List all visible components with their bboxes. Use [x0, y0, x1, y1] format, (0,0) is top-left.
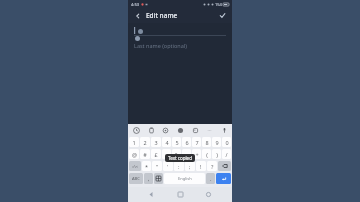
- button[interactable]: 6: [182, 137, 191, 147]
- button[interactable]: &: [172, 149, 181, 159]
- staticText: 5: [175, 139, 179, 146]
- staticText: /: [225, 151, 228, 158]
- button[interactable]: 7: [192, 137, 201, 147]
- staticText: Edit name: [146, 11, 178, 20]
- button[interactable]: ": [152, 161, 162, 171]
- button[interactable]: Enter: [216, 173, 231, 184]
- staticText: ;: [189, 163, 191, 170]
- button[interactable]: Emoji: [154, 173, 163, 184]
- button[interactable]: @: [129, 149, 139, 159]
- button[interactable]: Recents: [203, 189, 214, 200]
- staticText: £: [154, 151, 158, 158]
- staticText: 3: [154, 139, 158, 146]
- staticText: +: [195, 151, 199, 158]
- staticText: *: [145, 163, 149, 170]
- button[interactable]: 9: [212, 137, 221, 147]
- staticText: 4: [165, 139, 169, 146]
- button[interactable]: ;: [185, 161, 195, 171]
- button[interactable]: (: [202, 149, 211, 159]
- button[interactable]: Save: [217, 10, 228, 21]
- button[interactable]: 2: [140, 137, 150, 147]
- staticText: =\<: [132, 164, 139, 169]
- button[interactable]: ABC: [129, 173, 143, 184]
- button[interactable]: Sticker: [190, 125, 200, 135]
- button[interactable]: .: [206, 173, 215, 184]
- staticText: #: [143, 151, 147, 158]
- button[interactable]: =\<: [129, 161, 141, 171]
- button[interactable]: 4: [162, 137, 171, 147]
- staticText: ?: [211, 163, 214, 170]
- button[interactable]: :: [174, 161, 184, 171]
- staticText: 4:53: [131, 2, 139, 7]
- staticText: English: [178, 176, 192, 181]
- button[interactable]: *: [142, 161, 151, 171]
- staticText: 6: [185, 139, 189, 146]
- button[interactable]: +: [192, 149, 201, 159]
- button[interactable]: ?: [207, 161, 217, 171]
- staticText: ABC: [132, 176, 140, 181]
- button[interactable]: 8: [202, 137, 211, 147]
- button[interactable]: More: [204, 125, 214, 135]
- staticText: 8: [205, 139, 209, 146]
- button[interactable]: Settings: [160, 125, 170, 135]
- button[interactable]: Voice input: [219, 125, 229, 135]
- staticText: (: [206, 151, 208, 158]
- staticText: 154: [215, 2, 222, 7]
- button[interactable]: 5: [172, 137, 181, 147]
- button[interactable]: -: [182, 149, 191, 159]
- staticText: 2: [143, 139, 147, 146]
- staticText: &: [174, 151, 179, 158]
- staticText: Text copied: [168, 155, 192, 161]
- staticText: 9: [215, 139, 219, 146]
- button[interactable]: Theme: [175, 125, 185, 135]
- button[interactable]: 1: [129, 137, 139, 147]
- button[interactable]: /: [222, 149, 231, 159]
- staticText: 1: [132, 139, 136, 146]
- staticText: _: [165, 151, 168, 158]
- staticText: 0: [225, 139, 229, 146]
- staticText: ': [167, 163, 169, 170]
- staticText: !: [200, 163, 202, 170]
- button[interactable]: 3: [151, 137, 161, 147]
- staticText: 7: [195, 139, 199, 146]
- staticText: ): [216, 151, 218, 158]
- button[interactable]: _: [162, 149, 171, 159]
- button[interactable]: !: [196, 161, 206, 171]
- button[interactable]: Clipboard history: [131, 125, 141, 135]
- button[interactable]: ): [212, 149, 221, 159]
- button[interactable]: Back: [146, 189, 157, 200]
- staticText: -: [186, 151, 188, 158]
- button[interactable]: £: [151, 149, 161, 159]
- staticText: Last name (optional): [134, 42, 187, 49]
- button[interactable]: ,: [144, 173, 153, 184]
- staticText: :: [178, 163, 180, 170]
- button[interactable]: Back: [132, 10, 143, 21]
- button[interactable]: #: [140, 149, 150, 159]
- button[interactable]: Backspace: [218, 161, 231, 171]
- staticText: .: [210, 175, 212, 182]
- button[interactable]: ': [163, 161, 173, 171]
- button[interactable]: Home: [175, 189, 186, 200]
- button[interactable]: 0: [222, 137, 231, 147]
- button[interactable]: English: [164, 173, 205, 184]
- staticText: @: [132, 151, 137, 158]
- staticText: ": [156, 163, 159, 170]
- button[interactable]: Clipboard: [146, 125, 156, 135]
- staticText: ,: [148, 175, 150, 182]
